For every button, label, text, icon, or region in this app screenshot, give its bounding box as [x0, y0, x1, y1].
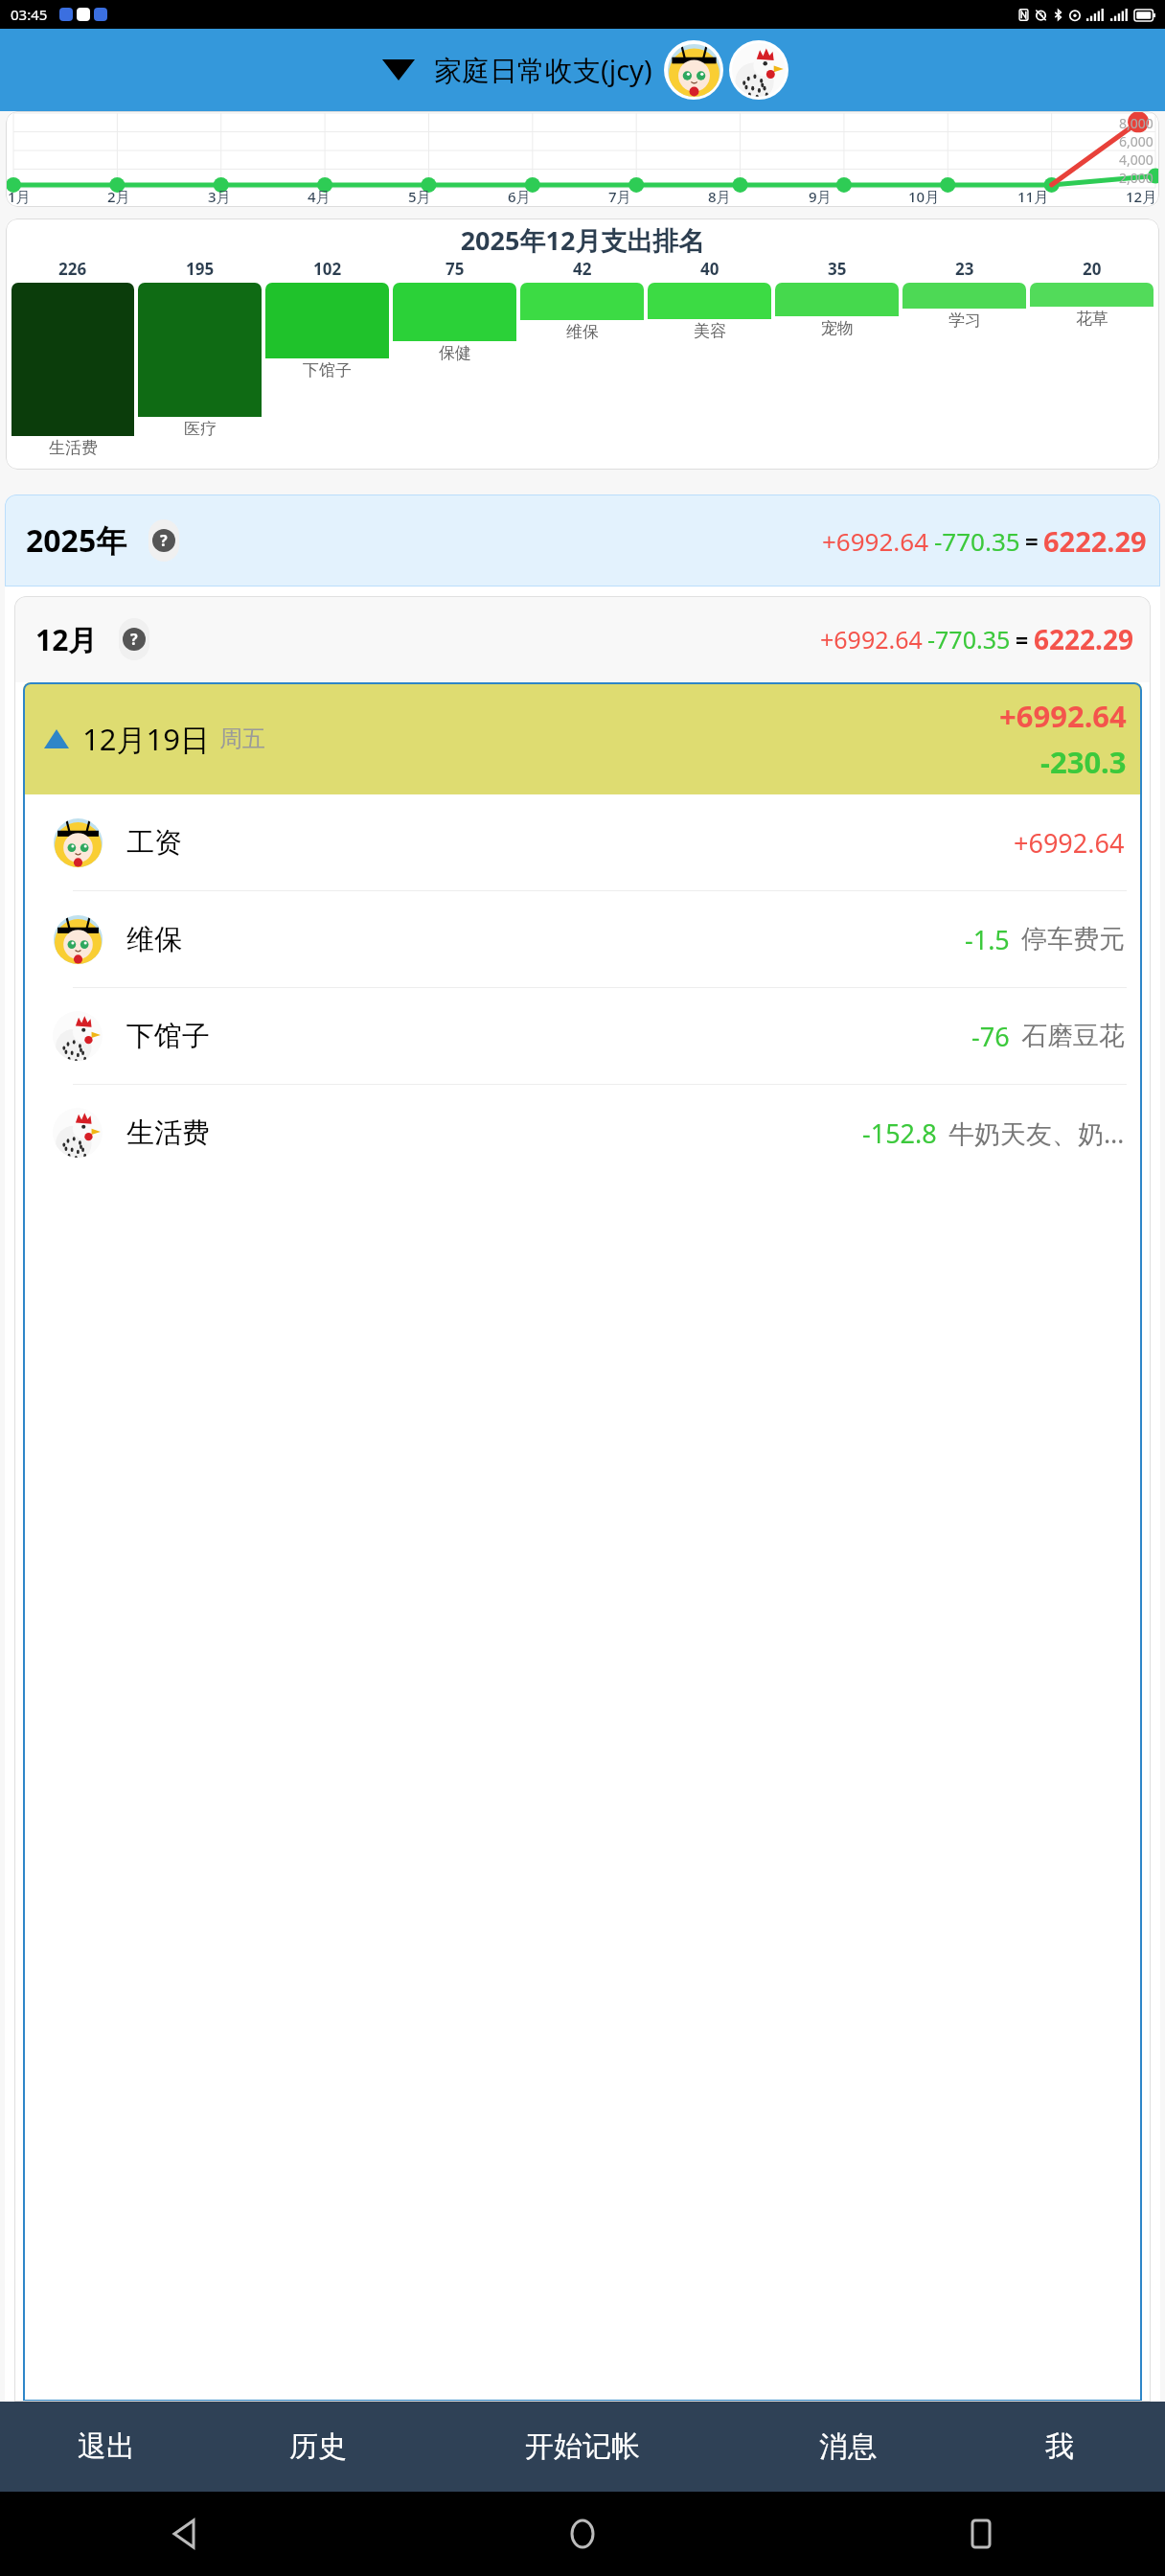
- button[interactable]: 我: [953, 2402, 1165, 2492]
- staticText: 9月: [809, 187, 832, 206]
- staticText: 生活费: [126, 1115, 210, 1151]
- staticText: =: [1016, 625, 1029, 655]
- staticText: 35: [828, 258, 847, 280]
- button[interactable]: 用户头像: [664, 40, 723, 100]
- button[interactable]: 12月: [14, 596, 1151, 682]
- button[interactable]: 2025年: [5, 494, 1160, 586]
- button[interactable]: 下馆子: [23, 988, 1142, 1084]
- staticText: 开始记帐: [525, 2428, 640, 2465]
- button[interactable]: 工资: [23, 794, 1142, 890]
- staticText: -76: [971, 1019, 1010, 1054]
- staticText: =: [1025, 525, 1039, 557]
- button[interactable]: 35: [775, 258, 899, 470]
- staticText: 医疗: [184, 419, 217, 439]
- button[interactable]: 75: [393, 258, 516, 470]
- staticText: 4,000: [1119, 150, 1154, 169]
- staticText: +6992.64: [822, 524, 929, 558]
- staticText: -770.35: [934, 524, 1020, 558]
- staticText: 2025年12月支出排名: [6, 222, 1159, 258]
- button[interactable]: 主页: [561, 2513, 604, 2555]
- button[interactable]: 展开: [377, 54, 421, 86]
- staticText: -152.8: [862, 1115, 937, 1151]
- staticText: -770.35: [927, 623, 1011, 655]
- button[interactable]: 23: [902, 258, 1026, 470]
- staticText: 6月: [508, 187, 531, 206]
- staticText: 10月: [908, 187, 940, 206]
- staticText: ?: [130, 629, 138, 650]
- staticText: 2,000: [1119, 169, 1154, 186]
- staticText: 12月: [1126, 187, 1157, 206]
- staticText: 退出: [78, 2428, 135, 2465]
- button[interactable]: 消息: [742, 2402, 953, 2492]
- staticText: ?: [160, 530, 168, 551]
- staticText: 下馆子: [126, 1019, 210, 1054]
- button[interactable]: 20: [1030, 258, 1154, 470]
- button[interactable]: 帮助: [119, 618, 149, 660]
- staticText: 03:45: [11, 5, 48, 24]
- staticText: 消息: [819, 2428, 877, 2465]
- staticText: 1月: [8, 187, 31, 206]
- staticText: 226: [58, 258, 87, 280]
- staticText: 3月: [208, 187, 231, 206]
- staticText: 195: [186, 258, 215, 280]
- staticText: 8,000: [1119, 114, 1154, 132]
- staticText: 维保: [566, 322, 599, 342]
- staticText: 石磨豆花: [1021, 1020, 1125, 1052]
- staticText: 4月: [308, 187, 331, 206]
- button[interactable]: 历史: [212, 2402, 423, 2492]
- button[interactable]: 返回: [163, 2513, 205, 2555]
- staticText: 周五: [219, 724, 265, 753]
- staticText: 5月: [408, 187, 431, 206]
- staticText: 40: [700, 258, 720, 280]
- staticText: 下馆子: [303, 360, 352, 380]
- staticText: 6222.29: [1043, 522, 1147, 560]
- button[interactable]: 102: [265, 258, 389, 470]
- staticText: 2025年: [26, 519, 127, 562]
- button[interactable]: 开始记帐: [423, 2402, 742, 2492]
- staticText: +6992.64: [820, 623, 923, 655]
- staticText: 保健: [439, 343, 471, 363]
- staticText: -1.5: [965, 922, 1010, 957]
- button[interactable]: 维保: [23, 891, 1142, 987]
- staticText: 历史: [289, 2428, 347, 2465]
- button[interactable]: 42: [520, 258, 644, 470]
- staticText: 102: [313, 258, 342, 280]
- button[interactable]: 退出: [0, 2402, 212, 2492]
- staticText: 牛奶天友、奶…: [948, 1115, 1125, 1151]
- button[interactable]: 226: [11, 258, 134, 470]
- staticText: 12月19日: [82, 719, 210, 759]
- staticText: 7月: [608, 187, 631, 206]
- button[interactable]: 帮助: [148, 519, 179, 562]
- staticText: +6992.64: [999, 696, 1127, 736]
- staticText: 42: [573, 258, 592, 280]
- staticText: +6992.64: [1014, 825, 1125, 861]
- button[interactable]: 195: [138, 258, 262, 470]
- staticText: -230.3: [1040, 742, 1127, 782]
- staticText: 生活费: [49, 438, 98, 458]
- staticText: 停车费元: [1021, 923, 1125, 955]
- staticText: 11月: [1017, 187, 1049, 206]
- staticText: 12月: [35, 620, 98, 659]
- button[interactable]: 12月19日: [23, 682, 1142, 794]
- staticText: 6,000: [1119, 132, 1154, 150]
- staticText: 2月: [107, 187, 130, 206]
- button[interactable]: 生活费: [23, 1085, 1142, 1181]
- staticText: 学习: [948, 310, 981, 331]
- staticText: 宠物: [821, 318, 854, 338]
- button[interactable]: 40: [648, 258, 771, 470]
- staticText: 我: [1045, 2428, 1074, 2465]
- button[interactable]: 账本头像: [729, 40, 788, 100]
- staticText: 花草: [1076, 309, 1108, 329]
- staticText: 6222.29: [1034, 621, 1133, 657]
- staticText: 美容: [694, 321, 726, 341]
- staticText: 23: [955, 258, 974, 280]
- staticText: 工资: [126, 825, 182, 861]
- staticText: 8月: [708, 187, 731, 206]
- button[interactable]: 家庭日常收支(jcy): [434, 51, 652, 89]
- staticText: 75: [445, 258, 465, 280]
- staticText: 20: [1083, 258, 1102, 280]
- staticText: 维保: [126, 922, 182, 957]
- button[interactable]: 最近任务: [960, 2513, 1002, 2555]
